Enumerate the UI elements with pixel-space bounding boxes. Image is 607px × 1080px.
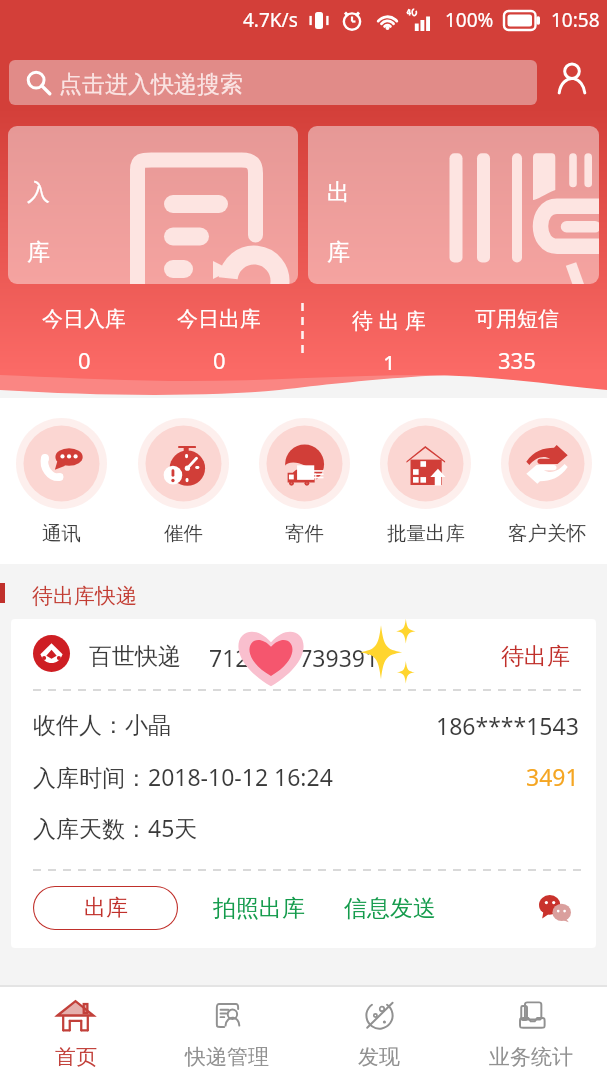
button[interactable]: 快递管理: [151, 987, 303, 1080]
staticText: 100%: [445, 7, 494, 33]
staticText: 收件人：小晶: [33, 711, 171, 740]
button[interactable]: 寄件: [244, 418, 365, 546]
staticText: 10:58: [551, 7, 600, 33]
staticText: 百世快递: [89, 642, 181, 671]
staticText: 3491: [526, 761, 579, 792]
staticText: 业务统计: [489, 1044, 573, 1070]
staticText: 出: [327, 178, 350, 207]
staticText: 首页: [55, 1044, 97, 1070]
staticText: 客户关怀: [508, 521, 586, 546]
button[interactable]: 发现: [303, 987, 455, 1080]
button[interactable]: 信息发送: [338, 886, 442, 930]
staticText: 寄件: [285, 521, 324, 546]
staticText: 待 出 库: [352, 306, 426, 335]
button[interactable]: Account: [550, 58, 594, 102]
staticText: 入: [27, 178, 50, 207]
button[interactable]: 拍照出库: [207, 886, 311, 930]
staticText: 入库天数：45天: [33, 812, 198, 843]
button[interactable]: 客户关怀: [486, 418, 607, 546]
staticText: 186****1543: [436, 710, 579, 741]
staticText: 0: [78, 345, 91, 370]
button[interactable]: 点击进入快递搜索: [9, 60, 537, 105]
staticText: 通讯: [42, 521, 81, 546]
staticText: 拍照出库: [213, 894, 305, 923]
button[interactable]: 待出库快递: [0, 564, 607, 619]
button[interactable]: 今日出库: [177, 298, 261, 370]
button[interactable]: 待 出 库: [352, 298, 426, 370]
staticText: 4.7K/s: [243, 7, 298, 33]
staticText: 批量出库: [387, 521, 465, 546]
staticText: 335: [498, 345, 536, 370]
staticText: 出库: [84, 894, 128, 922]
staticText: 快递管理: [185, 1044, 269, 1070]
button[interactable]: 催件: [122, 418, 244, 546]
staticText: 信息发送: [344, 894, 436, 923]
staticText: 0: [213, 345, 226, 370]
staticText: 待出库快递: [32, 583, 137, 609]
staticText: 库: [327, 238, 350, 267]
button[interactable]: Send WeChat message: [534, 887, 576, 929]
button[interactable]: 出: [308, 126, 599, 284]
button[interactable]: 通讯: [0, 418, 122, 546]
button[interactable]: 首页: [0, 987, 151, 1080]
staticText: 今日出库: [177, 306, 261, 332]
button[interactable]: 入: [8, 126, 298, 284]
button[interactable]: 百世快递: [11, 619, 596, 948]
staticText: 712****739391: [209, 642, 379, 673]
button[interactable]: 批量出库: [365, 418, 486, 546]
button[interactable]: 出库: [33, 886, 178, 930]
staticText: 可用短信: [475, 306, 559, 332]
staticText: 点击进入快递搜索: [59, 70, 243, 99]
staticText: 入库时间：2018-10-12 16:24: [33, 761, 333, 792]
staticText: 库: [27, 238, 50, 267]
button[interactable]: 今日入库: [42, 298, 126, 370]
staticText: 待出库: [501, 642, 570, 671]
button[interactable]: 可用短信: [475, 298, 559, 370]
staticText: 发现: [358, 1044, 400, 1070]
button[interactable]: 业务统计: [455, 987, 607, 1080]
staticText: 催件: [164, 521, 203, 546]
staticText: 1: [383, 348, 396, 370]
staticText: 今日入库: [42, 306, 126, 332]
